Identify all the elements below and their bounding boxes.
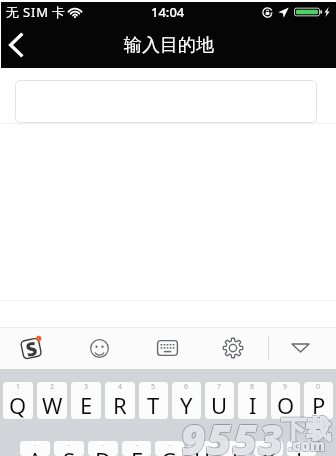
staticText: L — [296, 445, 308, 456]
button[interactable]: · — [155, 441, 184, 456]
staticText: 9553 — [180, 411, 284, 456]
staticText: SIM — [23, 3, 50, 21]
staticText: D — [95, 445, 112, 456]
staticText: 0 — [316, 382, 321, 392]
button[interactable]: · — [254, 441, 283, 456]
button[interactable]: 8 — [238, 382, 267, 419]
staticText: 无 — [6, 4, 19, 20]
staticText: 输入目的地 — [124, 34, 214, 57]
button[interactable]: 0 — [304, 382, 333, 419]
staticText: I — [249, 390, 257, 419]
button[interactable]: Keyboard layout — [143, 327, 191, 369]
staticText: 9553 — [182, 409, 286, 456]
button[interactable]: · — [122, 441, 151, 456]
staticText: 8 — [250, 382, 255, 392]
staticText: F — [131, 445, 143, 456]
staticText: J — [232, 445, 239, 456]
staticText: · — [235, 441, 237, 451]
button[interactable]: 4 — [105, 382, 135, 419]
staticText: E — [80, 390, 93, 419]
staticText: · — [301, 441, 303, 451]
staticText: 4 — [118, 382, 123, 392]
button[interactable]: 5 — [139, 382, 168, 419]
staticText: · — [102, 441, 104, 451]
button[interactable]: Back — [1, 23, 31, 67]
staticText: 7 — [217, 382, 222, 392]
staticText: R — [113, 390, 127, 419]
staticText: K — [262, 445, 276, 456]
staticText: 6 — [184, 382, 189, 392]
staticText: 14:04 — [151, 3, 185, 21]
staticText: 卡 — [52, 4, 65, 20]
staticText: H — [194, 445, 211, 456]
staticText: 9 — [283, 382, 288, 392]
staticText: 下载 — [282, 413, 332, 444]
button[interactable]: · — [88, 441, 118, 456]
button[interactable]: · — [54, 441, 84, 456]
staticText: 1 — [16, 382, 21, 392]
staticText: · — [136, 441, 138, 451]
staticText: P — [312, 390, 326, 419]
staticText: · — [268, 441, 270, 451]
staticText: Q — [9, 390, 27, 419]
staticText: 下载 — [280, 413, 330, 444]
staticText: · — [169, 441, 171, 451]
staticText: W — [42, 390, 63, 419]
staticText: 下载 — [281, 414, 331, 445]
staticText: A — [28, 445, 43, 456]
button[interactable]: Settings — [209, 327, 257, 369]
button[interactable]: Hide keyboard — [276, 327, 324, 369]
button[interactable]: 9 — [271, 382, 300, 419]
button[interactable] — [15, 80, 317, 123]
button[interactable]: Emoji — [75, 327, 123, 369]
button[interactable]: · — [221, 441, 250, 456]
staticText: 下载 — [280, 415, 330, 446]
staticText: Y — [180, 390, 193, 419]
staticText: 9553 — [180, 409, 284, 456]
staticText: T — [147, 390, 160, 419]
staticText: 3 — [84, 382, 89, 392]
button[interactable]: Sogou input method — [7, 327, 55, 369]
staticText: · — [68, 441, 70, 451]
staticText: G — [161, 445, 178, 456]
staticText: · — [34, 441, 36, 451]
staticText: · — [202, 441, 204, 451]
staticText: 下载 — [282, 415, 332, 446]
staticText: S — [63, 445, 76, 456]
staticText: 2 — [50, 382, 55, 392]
staticText: .com — [287, 434, 324, 454]
button[interactable]: 3 — [71, 382, 101, 419]
button[interactable]: 1 — [3, 382, 33, 419]
button[interactable]: 7 — [205, 382, 234, 419]
button[interactable]: · — [188, 441, 217, 456]
staticText: O — [277, 390, 295, 419]
staticText: .com — [288, 435, 325, 455]
staticText: U — [211, 390, 228, 419]
button[interactable]: · — [20, 441, 50, 456]
staticText: 9553 — [181, 410, 285, 456]
button[interactable]: · — [287, 441, 316, 456]
staticText: 9553 — [182, 411, 286, 456]
staticText: 5 — [151, 382, 156, 392]
staticText: .com — [289, 434, 326, 454]
staticText: S — [23, 335, 40, 363]
button[interactable]: 6 — [172, 382, 201, 419]
staticText: .com — [289, 436, 326, 456]
staticText: .com — [287, 436, 324, 456]
button[interactable]: 2 — [37, 382, 67, 419]
